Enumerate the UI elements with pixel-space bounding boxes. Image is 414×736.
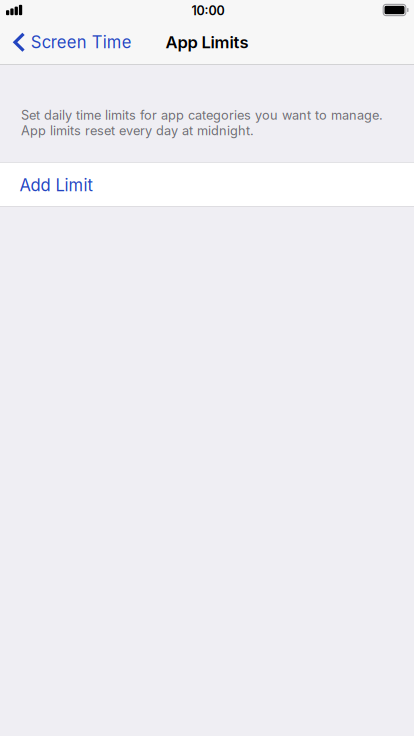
staticText: Screen Time xyxy=(31,32,132,52)
staticText: Set daily time limits for app categories… xyxy=(21,107,383,138)
button[interactable]: Screen Time xyxy=(0,20,140,64)
staticText: Add Limit xyxy=(19,175,92,195)
button[interactable]: Add Limit xyxy=(0,163,414,206)
staticText: App Limits xyxy=(165,32,248,52)
staticText: 10:00 xyxy=(191,3,224,18)
